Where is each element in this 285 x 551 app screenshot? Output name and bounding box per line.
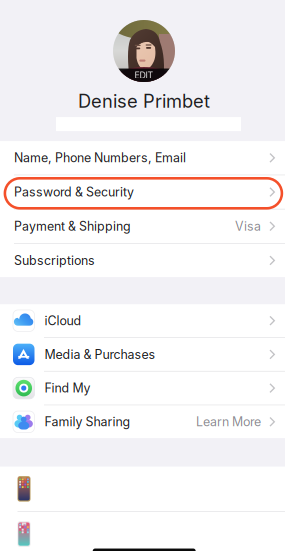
- staticText: Media & Purchases: [44, 347, 155, 362]
- button[interactable]: Media & Purchases: [0, 338, 285, 371]
- staticText: Visa: [235, 219, 261, 234]
- button[interactable]: Family Sharing: [0, 405, 285, 438]
- staticText: Denise Primbet: [78, 90, 210, 112]
- button[interactable]: Password & Security: [0, 175, 285, 209]
- button[interactable]: Subscriptions: [0, 244, 285, 277]
- staticText: Password & Security: [14, 185, 134, 200]
- button[interactable]: Name, Phone Numbers, Email: [0, 141, 285, 175]
- staticText: Find My: [44, 381, 90, 396]
- staticText: EDIT: [134, 70, 153, 80]
- button[interactable]: Device: [0, 512, 285, 551]
- button[interactable]: Payment & Shipping: [0, 209, 285, 243]
- button[interactable]: Edit profile photo: [113, 20, 175, 82]
- staticText: Payment & Shipping: [14, 219, 131, 234]
- button[interactable]: Find My: [0, 372, 285, 405]
- staticText: Subscriptions: [14, 253, 95, 268]
- button[interactable]: iCloud: [0, 304, 285, 337]
- staticText: Learn More: [196, 414, 261, 429]
- button[interactable]: Device: [0, 467, 285, 511]
- staticText: iCloud: [44, 313, 81, 328]
- staticText: Name, Phone Numbers, Email: [14, 150, 186, 165]
- staticText: Family Sharing: [44, 414, 130, 429]
